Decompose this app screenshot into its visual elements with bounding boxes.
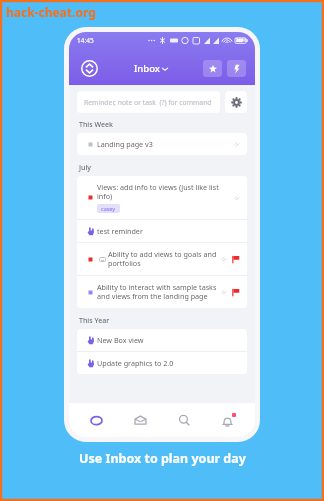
button[interactable]: Search	[167, 405, 201, 435]
staticText: Views: add info to views (just like list…	[97, 182, 231, 202]
staticText: Ability to interact with sample tasks an…	[97, 282, 218, 302]
staticText: Inbox	[134, 62, 160, 75]
button[interactable]: New Box view	[77, 329, 247, 351]
button[interactable]: Settings	[225, 91, 247, 113]
staticText: This Year	[79, 316, 110, 326]
button[interactable]: Notifications	[211, 405, 245, 435]
staticText: Ability to add views to goals and portfo…	[108, 249, 218, 269]
staticText: Update graphics to 2.0	[97, 358, 174, 368]
button[interactable]: Home	[79, 405, 113, 435]
button[interactable]: Ability to add views to goals and portfo…	[77, 243, 247, 275]
staticText: July	[79, 163, 92, 173]
staticText: Reminder, note or task (?) for command	[84, 98, 212, 107]
button[interactable]: Reminder, note or task (?) for command	[77, 91, 220, 113]
button[interactable]: Filter	[227, 60, 246, 77]
staticText: test reminder	[97, 226, 143, 236]
staticText: 70%	[235, 36, 247, 44]
staticText: This Week	[79, 120, 113, 130]
button[interactable]: Views: add info to views (just like list…	[77, 176, 247, 219]
button[interactable]: Inbox	[123, 405, 157, 435]
staticText: hack-cheat.org	[6, 4, 96, 20]
staticText: Landing page v3	[97, 139, 153, 149]
staticText: casey	[101, 205, 116, 212]
button[interactable]: Ability to interact with sample tasks an…	[77, 276, 247, 308]
staticText: 14:45	[77, 36, 94, 45]
button[interactable]: Favorites	[203, 60, 222, 77]
button[interactable]: Landing page v3	[77, 133, 247, 155]
staticText: New Box view	[97, 335, 144, 345]
button[interactable]: test reminder	[77, 220, 247, 242]
button[interactable]: Inbox	[131, 62, 171, 75]
button[interactable]: Update graphics to 2.0	[77, 352, 247, 374]
staticText: Use Inbox to plan your day	[79, 450, 246, 467]
button[interactable]: Sort	[78, 57, 100, 79]
